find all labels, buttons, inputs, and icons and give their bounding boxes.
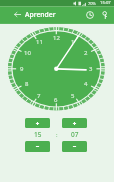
staticText: 12 bbox=[53, 34, 60, 42]
button[interactable]: Decrease bbox=[25, 141, 50, 152]
button[interactable]: Help bbox=[98, 8, 112, 22]
staticText: 1 bbox=[71, 38, 75, 46]
button[interactable]: Back bbox=[11, 8, 24, 21]
staticText: 3 bbox=[89, 65, 93, 73]
staticText: 15 bbox=[34, 130, 42, 139]
button[interactable]: Set time bbox=[83, 8, 97, 22]
staticText: 15:07 bbox=[100, 0, 111, 6]
staticText: 11 bbox=[36, 38, 43, 46]
staticText: : bbox=[56, 131, 58, 139]
button[interactable]: Increase bbox=[62, 118, 87, 128]
button[interactable]: Decrease bbox=[62, 141, 87, 152]
button[interactable]: Increase bbox=[25, 118, 50, 128]
staticText: 7 bbox=[37, 92, 41, 100]
staticText: 07 bbox=[71, 130, 79, 139]
staticText: 4 bbox=[84, 80, 88, 88]
staticText: 6 bbox=[54, 96, 58, 104]
staticText: 8 bbox=[25, 80, 29, 88]
staticText: 10 bbox=[24, 49, 31, 57]
staticText: 5 bbox=[71, 92, 75, 100]
staticText: 2 bbox=[84, 49, 88, 57]
staticText: Aprender bbox=[25, 10, 56, 19]
staticText: 70% bbox=[88, 1, 96, 6]
staticText: 9 bbox=[20, 65, 24, 73]
